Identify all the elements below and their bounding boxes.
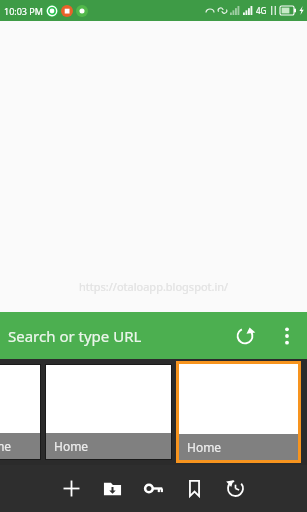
button[interactable]: Refresh [223, 314, 267, 358]
button[interactable]: History [215, 468, 256, 509]
button[interactable]: Bookmarks [174, 468, 215, 509]
staticText: 10:03 PM [4, 5, 43, 17]
button[interactable]: Home [45, 364, 172, 460]
button[interactable]: New tab [51, 468, 92, 509]
button[interactable]: Search or type URL [8, 312, 142, 359]
button[interactable]: Downloads [92, 468, 133, 509]
staticText: Home [187, 439, 222, 455]
staticText: Search or type URL [8, 326, 142, 346]
button[interactable]: Home [176, 361, 301, 463]
staticText: https://otaloapp.blogspot.in/ [79, 279, 229, 294]
staticText: Home [54, 438, 89, 454]
staticText: 4G [256, 5, 267, 16]
button[interactable]: More options [267, 316, 307, 356]
button[interactable]: Home [0, 364, 41, 460]
button[interactable]: Passwords [133, 468, 174, 509]
staticText: Home [0, 438, 12, 454]
